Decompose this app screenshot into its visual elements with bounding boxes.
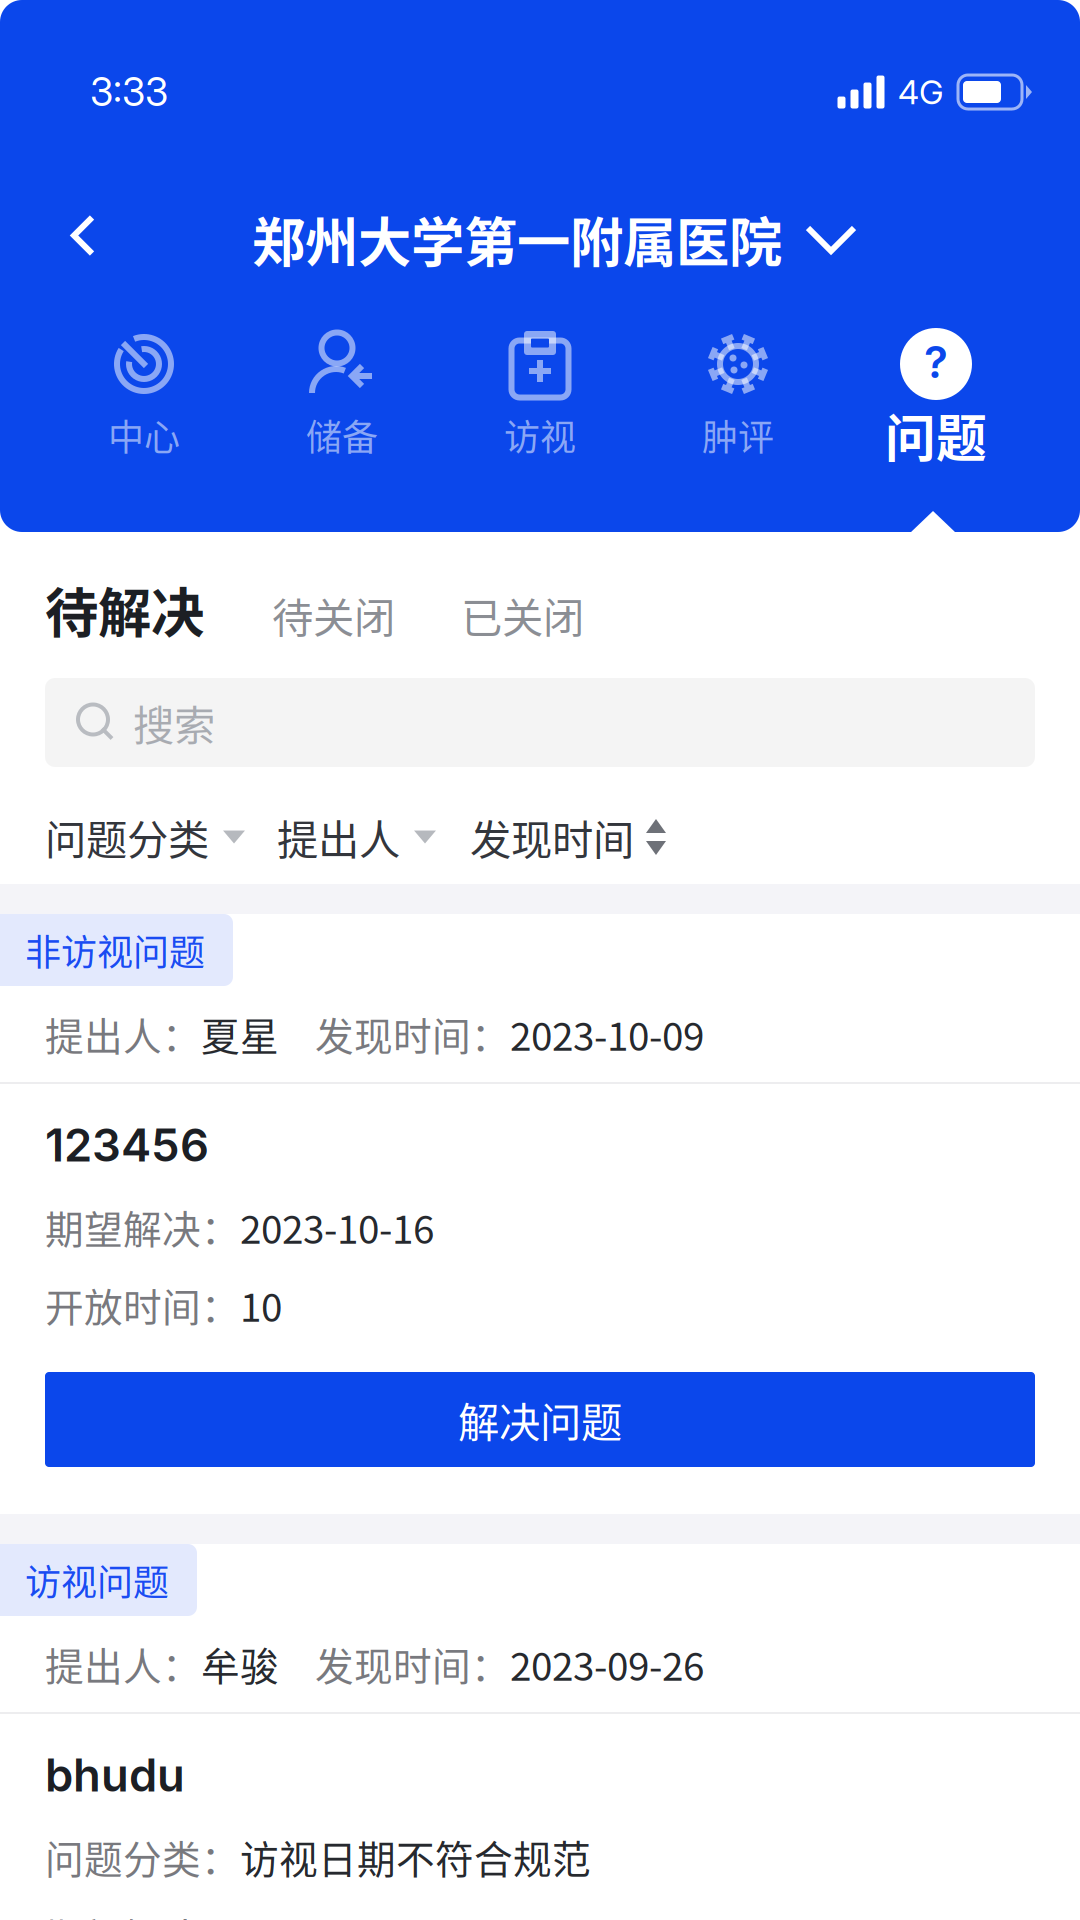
staticText: 牟骏 [201,1636,279,1692]
staticText: 3:33 [90,69,168,115]
staticText: 访视日期不符合规范 [240,1829,591,1885]
staticText: 2023-10-09 [510,1006,704,1062]
staticText: 问题分类 [45,807,209,867]
staticText: ? [924,335,948,389]
staticText: 夏星 [201,1006,279,1062]
staticText: 提出人： [45,1006,201,1062]
staticText: 提出人 [277,807,400,867]
staticText: 访视 [504,409,576,461]
staticText: 非访视问题 [25,924,205,976]
staticText: 待解决 [45,571,204,648]
staticText: 发现时间： [279,1636,510,1692]
staticText: bhudu [45,1748,185,1802]
button[interactable]: Back [0,194,127,284]
button[interactable]: 肿评 [639,328,837,462]
button[interactable]: 中心 [45,328,243,462]
button[interactable]: 待关闭 [272,585,461,648]
staticText: 已关闭 [461,585,584,645]
button[interactable]: 发现时间 [470,807,666,867]
button[interactable]: 储备 [243,328,441,462]
staticText: 待关闭 [272,585,395,645]
button[interactable]: bhudu [0,1714,1080,1920]
staticText: 发现时间： [279,1006,510,1062]
staticText: 问题 [885,398,987,472]
staticText: 2023-10-16 [240,1199,434,1255]
staticText: 问题分类： [45,1829,240,1885]
staticText: 提出人： [45,1636,201,1692]
staticText: 肿评 [702,409,774,461]
button[interactable]: 123456 [0,1084,1080,1344]
staticText: 访视问题 [25,1554,169,1606]
button[interactable]: 访视 [441,328,639,462]
staticText: 发现时间 [470,807,634,867]
button[interactable]: 问题分类 [45,807,277,867]
staticText: 123456 [45,1118,209,1172]
button[interactable]: ? [837,328,1035,462]
button[interactable]: 郑州大学第一附属医院 [222,194,858,284]
button[interactable]: 提出人 [277,807,470,867]
staticText: 期望解决： [45,1907,240,1920]
staticText: 2023-09-26 [510,1636,704,1692]
staticText: 期望解决： [45,1199,240,1255]
button[interactable]: 待解决 [45,571,272,648]
button[interactable]: 解决问题 [45,1372,1035,1467]
button[interactable]: 搜索 [45,678,1035,767]
staticText: 中心 [108,409,180,461]
staticText: 储备 [306,409,378,461]
staticText: 郑州大学第一附属医院 [252,200,782,278]
staticText: 开放时间： [45,1277,240,1333]
staticText: 4G [898,72,944,112]
staticText: 搜索 [133,693,215,752]
staticText: 10 [240,1277,282,1333]
staticText: 解决问题 [458,1390,622,1449]
button[interactable]: 已关闭 [461,585,584,648]
